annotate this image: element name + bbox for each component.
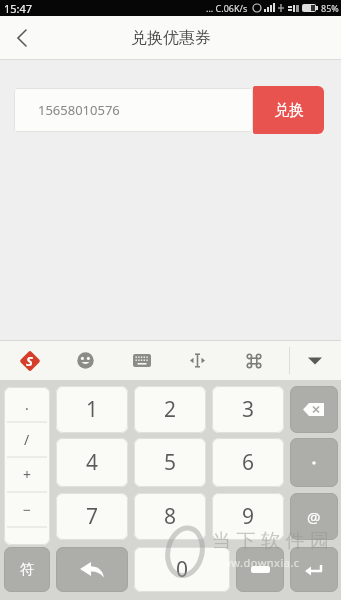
button[interactable]: . <box>4 387 50 545</box>
button[interactable] <box>130 349 153 372</box>
button[interactable]: 2 <box>134 386 206 433</box>
button[interactable]: 8 <box>134 493 206 540</box>
staticText: 15658010576 <box>38 101 120 119</box>
button[interactable]: @ <box>290 493 338 540</box>
staticText: ... C.06K/s <box>206 2 248 14</box>
button[interactable]: 0 <box>134 547 230 592</box>
staticText: 8 <box>164 502 177 531</box>
button[interactable] <box>56 547 128 592</box>
button[interactable] <box>0 16 44 60</box>
button[interactable]: 6 <box>212 438 284 487</box>
staticText: 2 <box>164 395 177 424</box>
staticText: − <box>23 500 32 519</box>
button[interactable] <box>242 349 265 372</box>
staticText: 4 <box>86 448 99 477</box>
staticText: 兑换 <box>274 101 304 120</box>
staticText: 符 <box>20 561 34 579</box>
staticText: 5 <box>164 448 177 477</box>
staticText: S <box>26 352 33 370</box>
staticText: 0 <box>176 555 189 584</box>
button[interactable]: 7 <box>56 493 128 540</box>
staticText: 15:47 <box>4 1 33 16</box>
staticText: 85% <box>321 2 339 14</box>
staticText: 3 <box>242 395 255 424</box>
button[interactable]: 4 <box>56 438 128 487</box>
button[interactable]: 符 <box>4 547 50 592</box>
staticText: 兑换优惠券 <box>131 28 211 48</box>
staticText: @ <box>307 507 321 527</box>
staticText: + <box>23 465 32 484</box>
button[interactable] <box>290 547 338 592</box>
staticText: 6 <box>242 448 255 477</box>
button[interactable] <box>290 386 338 433</box>
button[interactable]: 兑换 <box>253 86 324 134</box>
button[interactable]: 1 <box>56 386 128 433</box>
button[interactable] <box>290 438 338 487</box>
button[interactable]: 15658010576 <box>14 88 253 132</box>
button[interactable]: 9 <box>212 493 284 540</box>
staticText: 1 <box>86 395 99 424</box>
staticText: / <box>24 430 30 449</box>
button[interactable]: 5 <box>134 438 206 487</box>
button[interactable]: S <box>17 348 42 373</box>
button[interactable] <box>74 349 97 372</box>
button[interactable] <box>186 349 209 372</box>
staticText: 当下软件园 <box>212 529 335 553</box>
staticText: www.downxia.c <box>213 555 300 570</box>
staticText: . <box>25 395 29 414</box>
button[interactable] <box>303 349 327 373</box>
button[interactable] <box>236 547 284 592</box>
staticText: 9 <box>242 502 255 531</box>
staticText: 7 <box>86 502 99 531</box>
button[interactable]: 3 <box>212 386 284 433</box>
